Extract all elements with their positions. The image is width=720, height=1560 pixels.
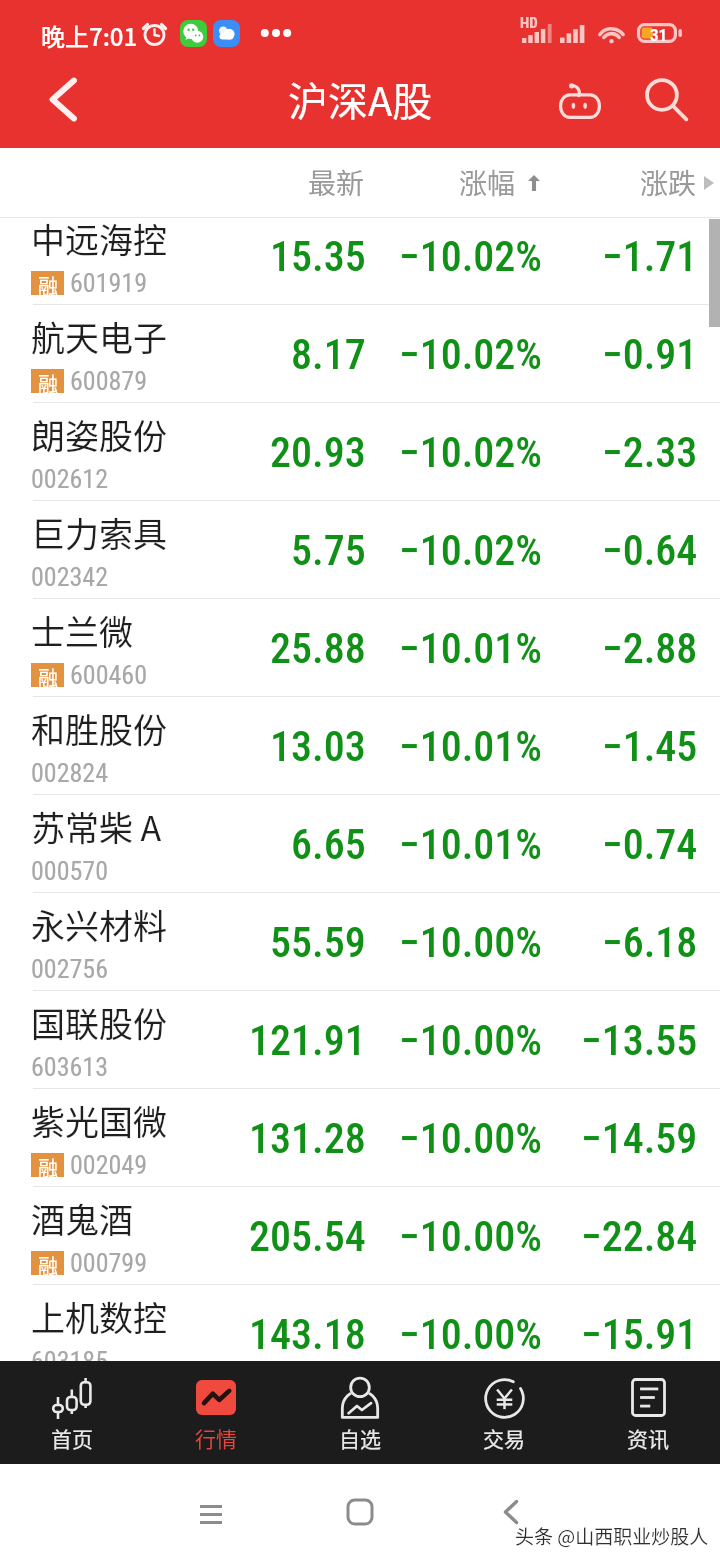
staticText: 55.59 — [270, 918, 366, 967]
staticText: 自选 — [339, 1423, 381, 1453]
staticText: 601919 — [70, 268, 148, 298]
button[interactable]: 资讯 — [576, 1361, 720, 1464]
staticText: 酒鬼酒 — [31, 1194, 133, 1243]
staticText: 紫光国微 — [31, 1096, 167, 1145]
staticText: 头条 @山西职业炒股人 — [515, 1522, 709, 1550]
button[interactable]: 朗姿股份 — [0, 403, 720, 501]
staticText: −10.00% — [399, 918, 543, 967]
button[interactable]: Back — [28, 64, 98, 134]
staticText: 交易 — [483, 1423, 525, 1453]
button[interactable]: Search — [632, 65, 702, 135]
staticText: 20.93 — [270, 428, 366, 477]
staticText: HD — [520, 14, 538, 32]
button[interactable]: AI assistant — [545, 66, 615, 136]
button[interactable]: 上机数控 — [0, 1285, 720, 1361]
staticText: 和胜股份 — [31, 704, 167, 753]
staticText: −0.64 — [602, 526, 698, 575]
staticText: −0.91 — [602, 330, 698, 379]
staticText: −10.00% — [399, 1114, 543, 1163]
staticText: 融 — [38, 271, 58, 295]
button[interactable]: 涨跌 — [640, 148, 720, 217]
staticText: 融 — [38, 663, 58, 687]
button[interactable]: 航天电子 — [0, 305, 720, 403]
staticText: 最新 — [308, 162, 365, 203]
staticText: 121.91 — [249, 1016, 366, 1065]
staticText: 002824 — [31, 758, 109, 788]
staticText: −10.00% — [399, 1212, 543, 1261]
staticText: 首页 — [51, 1423, 93, 1453]
staticText: 000570 — [31, 856, 109, 886]
button[interactable]: 士兰微 — [0, 599, 720, 697]
staticText: 资讯 — [627, 1423, 669, 1453]
staticText: 600460 — [70, 660, 148, 690]
staticText: 131.28 — [249, 1114, 366, 1163]
button[interactable]: 首页 — [0, 1361, 144, 1464]
staticText: −10.01% — [399, 722, 543, 771]
button[interactable]: 中远海控 — [0, 218, 720, 305]
staticText: 002756 — [31, 954, 109, 984]
staticText: 600879 — [70, 366, 148, 396]
staticText: −10.02% — [399, 428, 543, 477]
button[interactable]: Home — [332, 1484, 388, 1540]
staticText: −2.88 — [602, 624, 698, 673]
button[interactable]: 国联股份 — [0, 991, 720, 1089]
button[interactable]: 和胜股份 — [0, 697, 720, 795]
staticText: 融 — [38, 1153, 58, 1177]
staticText: 205.54 — [249, 1212, 366, 1261]
staticText: 融 — [38, 369, 58, 393]
staticText: 国联股份 — [31, 998, 167, 1047]
button[interactable]: 自选 — [288, 1361, 432, 1464]
staticText: −10.00% — [399, 1016, 543, 1065]
button[interactable]: 永兴材料 — [0, 893, 720, 991]
staticText: 15.35 — [270, 232, 366, 281]
staticText: 士兰微 — [31, 606, 133, 655]
staticText: 25.88 — [270, 624, 366, 673]
staticText: 航天电子 — [31, 312, 167, 361]
staticText: 603613 — [31, 1052, 109, 1082]
staticText: −10.01% — [399, 820, 543, 869]
staticText: 002342 — [31, 562, 109, 592]
staticText: 8.17 — [291, 330, 366, 379]
staticText: 晚上7:01 — [41, 18, 138, 53]
button[interactable]: 苏常柴 A — [0, 795, 720, 893]
staticText: 巨力索具 — [31, 508, 167, 557]
staticText: −1.71 — [602, 232, 698, 281]
staticText: 143.18 — [249, 1310, 366, 1359]
staticText: −10.02% — [399, 526, 543, 575]
staticText: 沪深A股 — [288, 70, 433, 128]
button[interactable]: 涨幅 — [459, 148, 557, 217]
button[interactable]: 紫光国微 — [0, 1089, 720, 1187]
staticText: 涨幅 — [459, 162, 516, 203]
staticText: 永兴材料 — [31, 900, 167, 949]
staticText: 行情 — [195, 1423, 237, 1453]
button[interactable]: 酒鬼酒 — [0, 1187, 720, 1285]
button[interactable]: 巨力索具 — [0, 501, 720, 599]
button[interactable]: 交易 — [432, 1361, 576, 1464]
staticText: −15.91 — [581, 1310, 698, 1359]
staticText: 603185 — [31, 1346, 109, 1361]
staticText: 朗姿股份 — [31, 410, 167, 459]
staticText: 31 — [650, 25, 668, 45]
staticText: −10.02% — [399, 330, 543, 379]
staticText: 002049 — [70, 1150, 148, 1180]
staticText: 苏常柴 A — [31, 802, 162, 851]
staticText: 13.03 — [270, 722, 366, 771]
staticText: 中远海控 — [31, 218, 167, 263]
staticText: −14.59 — [581, 1114, 698, 1163]
button[interactable]: 最新 — [308, 148, 408, 217]
staticText: 上机数控 — [31, 1292, 167, 1341]
staticText: 6.65 — [291, 820, 366, 869]
staticText: 涨跌 — [640, 162, 697, 203]
staticText: 000799 — [70, 1248, 148, 1278]
staticText: −10.01% — [399, 624, 543, 673]
button[interactable]: 行情 — [144, 1361, 288, 1464]
staticText: −6.18 — [602, 918, 698, 967]
staticText: −2.33 — [602, 428, 698, 477]
staticText: 002612 — [31, 464, 109, 494]
button[interactable]: Recents — [183, 1486, 239, 1542]
staticText: 融 — [38, 1251, 58, 1275]
staticText: −1.45 — [602, 722, 698, 771]
staticText: −22.84 — [581, 1212, 698, 1261]
staticText: −10.00% — [399, 1310, 543, 1359]
button[interactable]: Back — [483, 1484, 539, 1540]
